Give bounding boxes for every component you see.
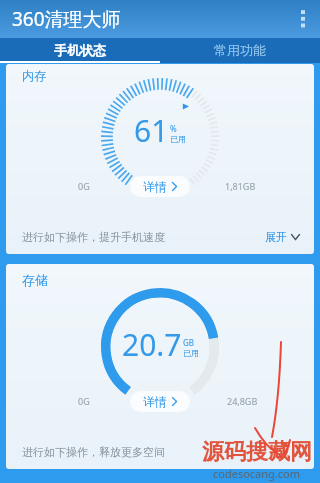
staticText: codesocang.com	[213, 466, 301, 481]
staticText: %	[170, 123, 177, 134]
staticText: 0G	[78, 395, 90, 407]
staticText: 0G	[78, 180, 90, 192]
staticText: GB	[183, 337, 195, 348]
staticText: 展开	[265, 230, 287, 244]
staticText: 24,8GB	[227, 395, 258, 407]
staticText: 已用	[170, 134, 186, 144]
staticText: 内存	[22, 68, 46, 83]
staticText: 360清理大师	[12, 6, 121, 32]
staticText: 详情	[143, 179, 167, 194]
button[interactable]: 手机状态	[0, 38, 160, 61]
button[interactable]: 详情	[130, 176, 190, 197]
staticText: 进行如下操作，提升手机速度	[22, 230, 165, 244]
staticText: 存储	[22, 272, 48, 288]
staticText: 常用功能	[214, 42, 266, 58]
staticText: 61	[134, 110, 169, 151]
staticText: 手机状态	[54, 42, 106, 58]
staticText: 1,81GB	[225, 180, 256, 192]
staticText: 已用	[183, 348, 199, 358]
staticText: 详情	[143, 394, 167, 409]
staticText: 进行如下操作，释放更多空间	[22, 445, 165, 459]
staticText: 20.7	[122, 324, 182, 365]
button[interactable]: More options	[286, 0, 320, 38]
button[interactable]: 展开	[251, 224, 314, 250]
button[interactable]: 详情	[130, 391, 190, 412]
button[interactable]: 常用功能	[160, 38, 320, 61]
staticText: 源码搜藏网	[202, 438, 312, 466]
